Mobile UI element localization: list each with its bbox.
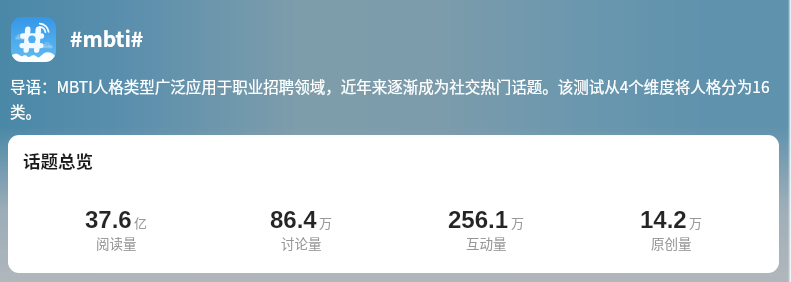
staticText: 86.4 xyxy=(270,206,317,233)
staticText: 14.2 xyxy=(640,206,687,233)
staticText: 37.6 xyxy=(85,206,132,233)
button[interactable]: 86.4 xyxy=(209,206,394,253)
staticText: 互动量 xyxy=(466,233,507,253)
button[interactable]: 话题总览 xyxy=(23,148,93,173)
button[interactable]: 37.6 xyxy=(24,206,209,253)
staticText: 导语：MBTI人格类型广泛应用于职业招聘领域，近年来逐渐成为社交热门话题。该测试… xyxy=(10,75,791,122)
button[interactable]: 14.2 xyxy=(579,206,764,253)
button[interactable]: 话题 xyxy=(11,17,56,62)
button[interactable]: 256.1 xyxy=(394,206,579,253)
staticText: 亿 xyxy=(134,213,148,232)
staticText: 万 xyxy=(319,213,333,232)
button[interactable]: #mbti# xyxy=(70,23,144,53)
staticText: 讨论量 xyxy=(281,233,322,253)
staticText: #mbti# xyxy=(70,23,144,53)
staticText: 万 xyxy=(511,213,525,232)
staticText: 话题总览 xyxy=(23,148,93,173)
staticText: 万 xyxy=(689,213,703,232)
staticText: 阅读量 xyxy=(96,233,137,253)
staticText: 256.1 xyxy=(448,206,509,233)
staticText: 原创量 xyxy=(651,233,692,253)
